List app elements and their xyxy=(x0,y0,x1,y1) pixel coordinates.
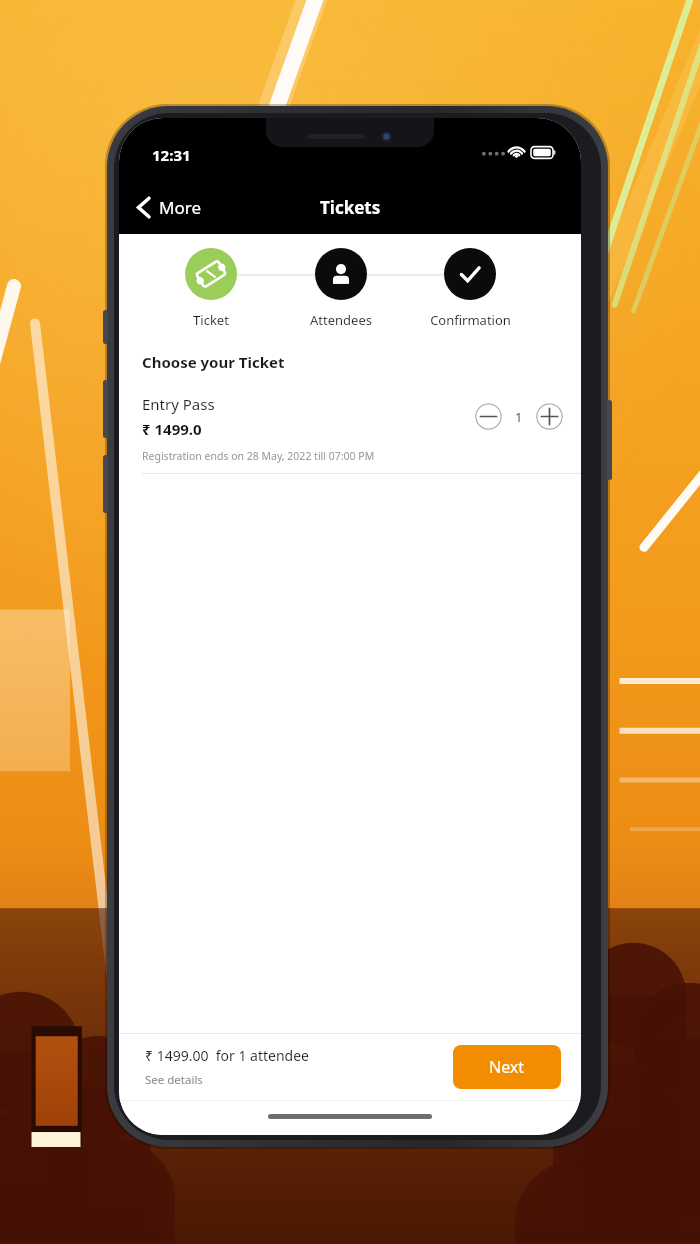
staticText: Next xyxy=(489,1056,525,1078)
staticText: More xyxy=(159,196,201,219)
staticText: Choose your Ticket xyxy=(142,352,285,372)
staticText: ₹ 1499.0 xyxy=(142,419,202,439)
button[interactable]: Next xyxy=(453,1045,561,1089)
staticText: Confirmation xyxy=(430,311,511,329)
staticText: 1 xyxy=(515,408,523,426)
staticText: Ticket xyxy=(193,311,229,329)
staticText: Registration ends on 28 May, 2022 till 0… xyxy=(142,449,375,463)
button[interactable]: Increase quantity xyxy=(536,403,563,430)
button[interactable]: See details xyxy=(145,1072,203,1088)
button[interactable]: More xyxy=(119,188,213,227)
staticText: ₹ 1499.00 for 1 attendee xyxy=(145,1046,309,1065)
button[interactable]: Decrease quantity xyxy=(475,403,502,430)
staticText: Entry Pass xyxy=(142,394,215,414)
button[interactable]: Ticket xyxy=(166,248,256,329)
staticText: Tickets xyxy=(320,196,381,219)
staticText: Attendees xyxy=(310,311,372,329)
staticText: 12:31 xyxy=(152,145,191,165)
button[interactable]: Confirmation xyxy=(425,248,515,329)
button[interactable]: Attendees xyxy=(296,248,386,329)
